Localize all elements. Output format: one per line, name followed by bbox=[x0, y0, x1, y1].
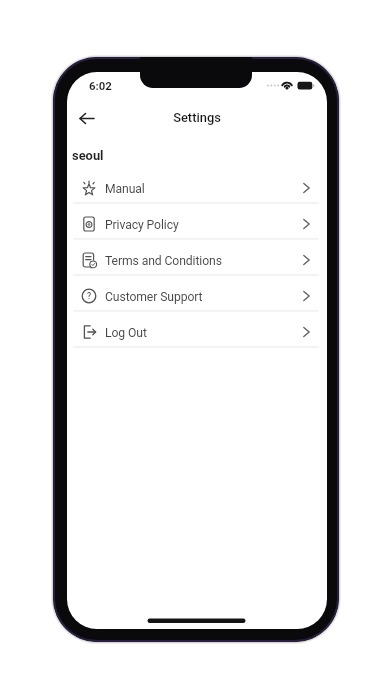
button[interactable] bbox=[73, 108, 101, 130]
staticText: Settings bbox=[67, 110, 327, 125]
staticText: 6:02 bbox=[89, 79, 112, 92]
button[interactable]: Log Out bbox=[67, 315, 327, 351]
staticText: Terms and Conditions bbox=[105, 254, 222, 268]
button[interactable]: Terms and Conditions bbox=[67, 243, 327, 279]
staticText: Customer Support bbox=[105, 290, 203, 304]
staticText: Log Out bbox=[105, 326, 147, 340]
button[interactable]: ? bbox=[67, 279, 327, 315]
staticText: Privacy Policy bbox=[105, 218, 179, 232]
button[interactable]: Privacy Policy bbox=[67, 207, 327, 243]
staticText: ? bbox=[87, 291, 92, 301]
staticText: seoul bbox=[72, 148, 104, 163]
staticText: Manual bbox=[105, 182, 145, 196]
button[interactable]: Manual bbox=[67, 171, 327, 207]
